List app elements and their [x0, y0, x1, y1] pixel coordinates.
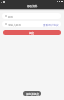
staticText: 保存并提交 [26, 92, 39, 95]
button[interactable]: 查看用户协议 [43, 23, 59, 26]
button[interactable]: 请输入昵称 [2, 21, 61, 27]
button[interactable]: 昵称 [2, 13, 61, 19]
staticText: 修改资料 [27, 4, 38, 7]
staticText: 昵称 [8, 15, 14, 18]
button[interactable]: 提交 [3, 30, 61, 35]
staticText: 请输入昵称 [8, 23, 21, 26]
staticText: 提交 [29, 31, 35, 34]
button[interactable]: 保存并提交 [23, 91, 41, 96]
